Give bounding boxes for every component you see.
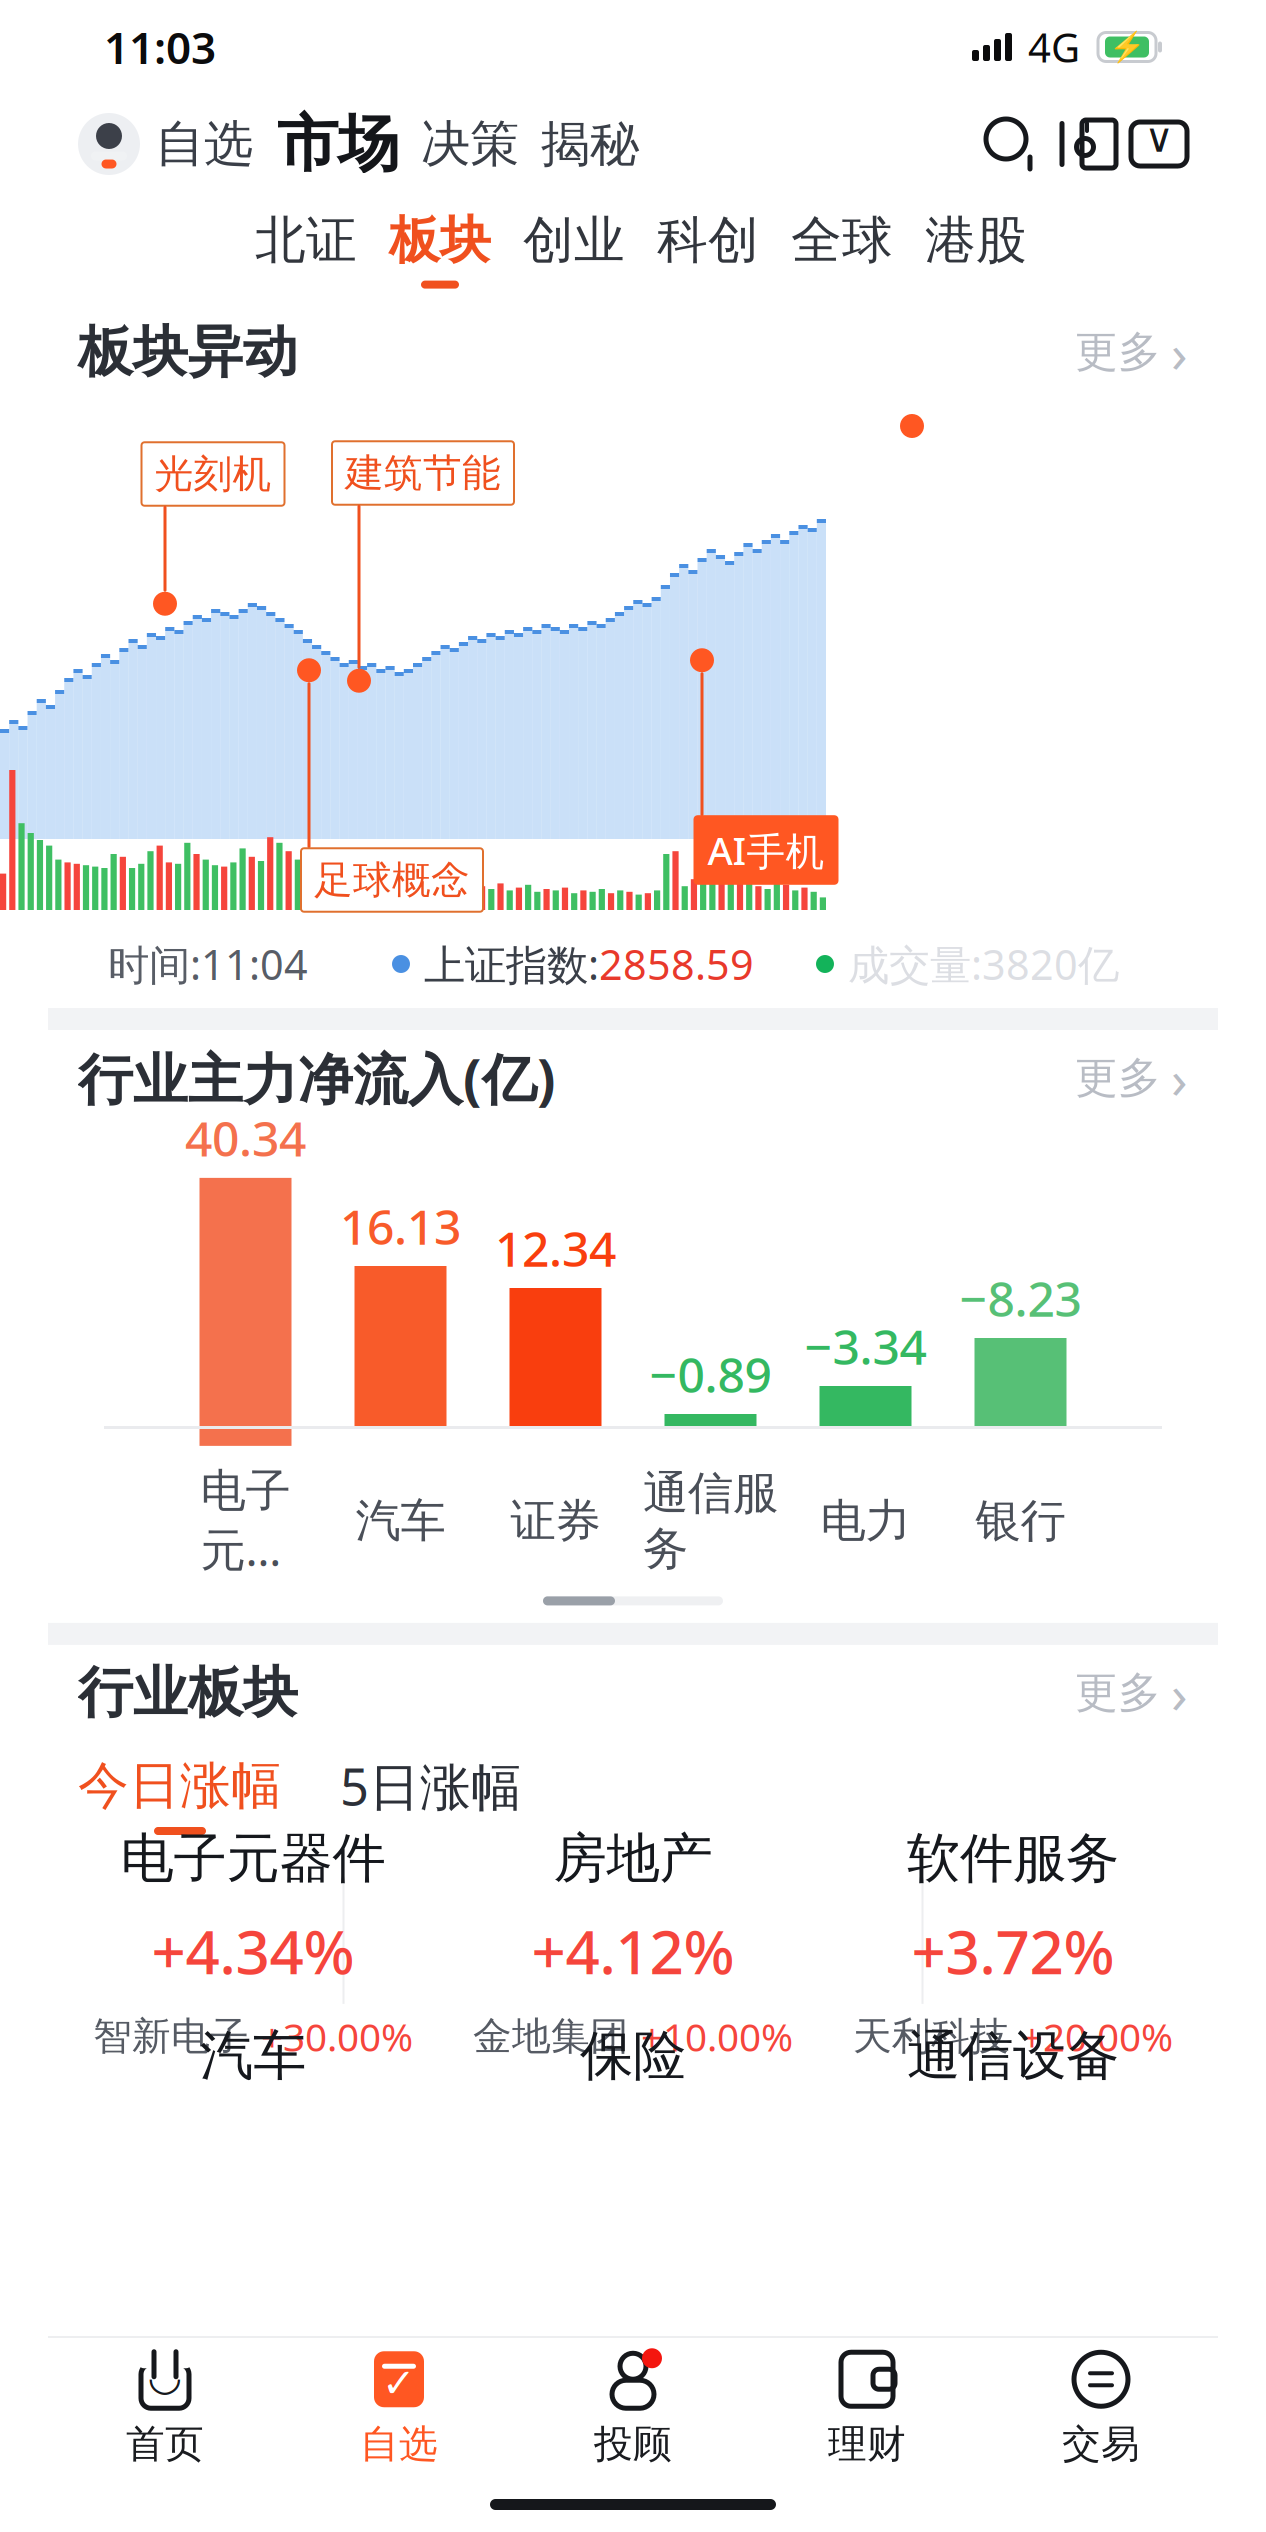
staticText: 证券 [510,1493,600,1549]
staticText: 行业主力净流入(亿) [78,1042,556,1114]
button[interactable]: 全球 [775,203,909,295]
button[interactable]: ✓ [282,2344,516,2472]
staticText: 行业板块 [78,1659,298,1726]
staticText: 软件服务 [907,1826,1119,1891]
button[interactable]: 交易 [984,2344,1218,2472]
button[interactable]: 创业 [507,203,641,295]
staticText: 时间:11:04 [108,937,308,991]
staticText: 银行 [975,1493,1065,1549]
staticText: 2858.59 [599,937,754,991]
button[interactable]: 更多 [1055,1649,1188,1736]
staticText: 投顾 [594,2420,672,2468]
staticText: 港股 [925,209,1027,272]
staticText: › [1171,1657,1188,1728]
staticText: 交易 [1062,2420,1140,2468]
staticText: 板块 [389,209,491,272]
button[interactable]: 北证 [239,203,373,295]
button[interactable]: Ask [1042,115,1114,173]
staticText: 智新电子 [93,2013,249,2060]
staticText: 今日涨幅 [78,1755,282,1817]
staticText: 更多 [1075,326,1161,378]
staticText: 16.13 [340,1194,461,1258]
staticText: 自选 [155,114,253,174]
button[interactable]: 投顾 [516,2344,750,2472]
staticText: 决策 [421,114,519,174]
staticText: 通信服务 [643,1465,778,1577]
button[interactable]: 科创 [641,203,775,295]
staticText: 40.34 [185,1106,306,1170]
staticText: 电子元器件 [120,1826,385,1891]
staticText: 更多 [1075,1052,1161,1104]
staticText: +4.34% [151,1911,354,1991]
staticText: 市场 [277,106,399,182]
button[interactable]: 揭秘 [530,104,650,184]
staticText: › [1171,317,1188,387]
button[interactable]: 更多 [1055,309,1188,395]
button[interactable]: 今日涨幅 [78,1749,282,1841]
staticText: 天利科技 [853,2013,1009,2060]
staticText: 科创 [657,209,759,272]
staticText: › [1171,1043,1188,1113]
staticText: 全球 [791,209,893,272]
staticText: +20.00% [1021,2011,1173,2062]
staticText: ✓ [382,2361,416,2406]
button[interactable]: 理财 [750,2344,984,2472]
staticText: +4.12% [531,1911,734,1991]
staticText: 光刻机 [154,450,271,498]
staticText: ◡ [149,2354,180,2399]
staticText: 成交量:3820亿 [848,937,1119,991]
staticText: 通信设备 [907,2023,1119,2089]
button[interactable]: 更多 [1055,1035,1188,1121]
button[interactable]: 港股 [909,203,1043,295]
staticText: 4G [1028,20,1080,73]
staticText: 理财 [828,2420,906,2468]
staticText: 板块异动 [78,318,298,385]
staticText: 北证 [255,209,357,272]
staticText: 房地产 [553,1826,712,1891]
button[interactable]: Messages [1114,115,1190,173]
button[interactable]: 软件服务 [823,1849,1203,2039]
staticText: +30.00% [261,2011,413,2062]
button[interactable]: 自选 [142,104,266,184]
staticText: AI手机 [707,824,824,876]
staticText: +3.72% [911,1911,1114,1991]
staticText: 11:03 [104,18,216,76]
staticText: 足球概念 [314,856,470,904]
staticText: 揭秘 [541,114,639,174]
staticText: 金地集团 [473,2013,629,2060]
staticText: 建筑节能 [345,449,501,497]
staticText: ∨ [1144,115,1173,161]
button[interactable]: Search [980,113,1042,175]
staticText: 5日涨幅 [340,1752,522,1819]
button[interactable]: 决策 [410,104,530,184]
staticText: 12.34 [495,1216,616,1280]
staticText: 首页 [126,2420,204,2468]
staticText: −3.34 [804,1314,926,1378]
staticText: 电子元… [200,1463,290,1579]
staticText: −0.89 [649,1342,771,1406]
staticText: 创业 [523,209,625,272]
staticText: −8.23 [959,1266,1081,1330]
button[interactable]: 市场 [266,102,410,186]
staticText: 自选 [360,2420,438,2468]
staticText: +10.00% [641,2011,793,2062]
button[interactable]: Profile [76,111,142,177]
button[interactable]: 房地产 [443,1849,823,2039]
staticText: 电力 [820,1493,910,1549]
button[interactable]: 5日涨幅 [282,1746,522,1843]
staticText: 更多 [1075,1667,1161,1719]
staticText: 上证指数: [424,937,599,991]
button[interactable]: ◡ [48,2344,282,2472]
staticText: 汽车 [355,1493,445,1549]
button[interactable]: 板块 [373,203,507,295]
staticText: ⚡ [1108,30,1145,64]
staticText: 汽车 [200,2023,306,2089]
staticText: 保险 [580,2023,686,2089]
button[interactable]: 电子元器件 [63,1849,443,2039]
